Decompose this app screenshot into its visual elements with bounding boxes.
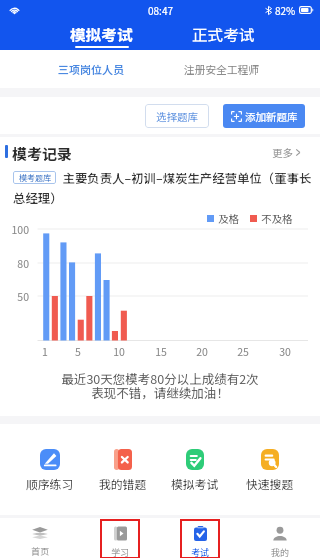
button[interactable]: 考试 — [180, 519, 220, 558]
staticText: 表现不错，请继续加油！ — [0, 383, 320, 401]
staticText: 考试 — [191, 546, 210, 558]
button[interactable]: 我的 — [260, 519, 300, 558]
button[interactable]: 添加新题库 — [223, 104, 305, 128]
button[interactable]: 首页 — [20, 519, 60, 558]
staticText: 25 — [231, 344, 255, 359]
button[interactable]: 注册安全工程师 — [156, 50, 286, 88]
button[interactable]: 顺序练习 — [17, 449, 83, 492]
staticText: 30 — [273, 344, 297, 359]
staticText: 三项岗位人员 — [58, 61, 124, 77]
staticText: 更多 — [272, 145, 293, 160]
button[interactable]: 模拟考试 — [162, 449, 228, 492]
button[interactable]: 三项岗位人员 — [26, 50, 156, 88]
button[interactable]: 更多 — [272, 145, 301, 160]
staticText: 我的错题 — [99, 475, 147, 492]
staticText: 最近30天您模考80分以上成绩有2次 — [0, 369, 320, 387]
staticText: 快速搜题 — [246, 475, 294, 492]
button[interactable]: 学习 — [100, 519, 140, 558]
staticText: 5 — [66, 344, 90, 359]
staticText: 及格 — [218, 211, 239, 226]
staticText: 50 — [7, 289, 29, 304]
staticText: 10 — [107, 344, 131, 359]
staticText: 模考题库 — [19, 172, 51, 184]
button[interactable]: 正式考试 — [162, 20, 284, 50]
staticText: 添加新题库 — [245, 109, 298, 124]
staticText: 模拟考试 — [70, 23, 133, 46]
staticText: 我的 — [271, 546, 290, 558]
button[interactable]: 选择题库 — [145, 104, 209, 128]
staticText: 正式考试 — [192, 23, 255, 46]
staticText: 不及格 — [261, 211, 293, 226]
staticText: 80 — [7, 256, 29, 271]
staticText: 08:47 — [148, 3, 173, 17]
button[interactable]: 我的错题 — [90, 449, 156, 492]
staticText: 注册安全工程师 — [184, 62, 259, 77]
button[interactable]: 快速搜题 — [237, 449, 303, 492]
button[interactable]: 模拟考试 — [40, 20, 162, 50]
staticText: 学习 — [111, 546, 130, 558]
staticText: 首页 — [31, 545, 50, 558]
staticText: 82% — [275, 3, 296, 17]
staticText: 1 — [33, 344, 57, 359]
staticText: 100 — [7, 222, 29, 237]
staticText: 20 — [190, 344, 214, 359]
staticText: 模拟考试 — [171, 475, 219, 492]
staticText: 顺序练习 — [26, 475, 74, 492]
staticText: 主要负责人–初训–煤炭生产经营单位（董事长总经理） — [13, 169, 314, 206]
staticText: 15 — [149, 344, 173, 359]
staticText: 选择题库 — [156, 109, 198, 124]
staticText: 模考记录 — [12, 143, 73, 165]
